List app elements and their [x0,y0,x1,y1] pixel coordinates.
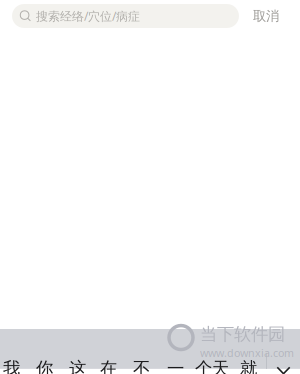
button[interactable]: 搜索经络/穴位/病症 [12,4,239,28]
staticText: 当下软件园 [200,323,285,345]
staticText: 个天 [195,358,229,374]
staticText: 取消 [253,8,279,24]
button[interactable]: 就 [240,358,256,374]
button[interactable]: Expand candidates [267,359,300,374]
staticText: 你 [36,358,53,374]
button[interactable]: 我 [3,358,36,374]
button[interactable]: 不 [133,358,167,374]
staticText: 一 [167,358,184,374]
button[interactable]: 在 [100,358,133,374]
staticText: 搜索经络/穴位/病症 [36,8,140,24]
button[interactable]: 取消 [253,8,279,24]
staticText: 我 [3,358,20,374]
staticText: 不 [133,358,150,374]
staticText: 就 [240,358,257,374]
staticText: 这 [69,358,86,374]
button[interactable]: 你 [36,358,69,374]
button[interactable]: 个天 [195,358,240,374]
button[interactable]: 这 [69,358,100,374]
staticText: 在 [100,358,117,374]
button[interactable]: 一 [167,358,195,374]
staticText: www.downxia.com [200,346,294,360]
